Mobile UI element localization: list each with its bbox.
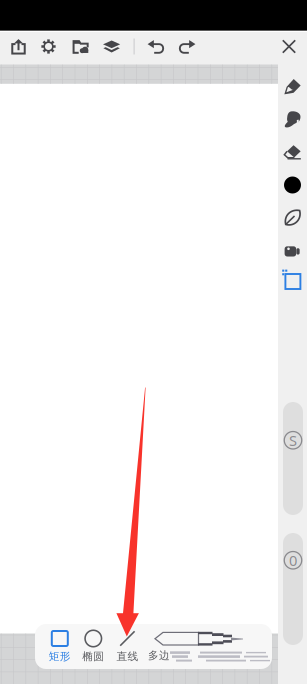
button[interactable]: Layers [103, 39, 120, 54]
staticText: 直线 [116, 650, 138, 663]
button[interactable]: Pencil [284, 77, 301, 94]
button[interactable]: Settings [41, 39, 56, 54]
button[interactable]: Files [72, 39, 88, 54]
button[interactable]: Leaf brush [284, 209, 301, 226]
button[interactable]: Close [282, 40, 296, 53]
button[interactable]: Undo [147, 39, 164, 53]
staticText: 椭圆 [82, 650, 104, 663]
button[interactable]: Share [11, 39, 26, 54]
button[interactable]: Select shape [282, 269, 301, 289]
button[interactable]: Opacity [283, 533, 303, 645]
staticText: 矩形 [49, 650, 71, 663]
button[interactable]: Eraser [284, 143, 301, 160]
button[interactable]: Size [283, 402, 303, 515]
button[interactable]: Camera [284, 242, 301, 259]
staticText: 0 [289, 550, 297, 570]
button[interactable]: 椭圆 [77, 624, 110, 668]
button[interactable]: Colour [284, 176, 301, 193]
staticText: S [289, 430, 297, 450]
button[interactable]: 直线 [111, 624, 144, 668]
button[interactable]: Marker [284, 110, 301, 127]
button[interactable]: 矩形 [43, 624, 76, 668]
staticText: 多边 [148, 649, 170, 662]
button[interactable]: Redo [179, 39, 196, 53]
